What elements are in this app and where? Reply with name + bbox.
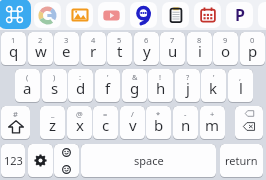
button[interactable]: 123 bbox=[1, 144, 25, 177]
button[interactable]: _ bbox=[40, 106, 65, 139]
staticText: r bbox=[90, 41, 97, 61]
staticText: a bbox=[23, 78, 32, 98]
button[interactable]: Backspace bbox=[235, 106, 263, 139]
button[interactable]: & bbox=[122, 69, 147, 102]
staticText: l bbox=[239, 78, 243, 98]
staticText: n bbox=[181, 115, 191, 135]
staticText: 6 bbox=[144, 35, 149, 45]
staticText: P bbox=[235, 4, 245, 26]
staticText: & bbox=[132, 72, 138, 82]
staticText: w bbox=[35, 41, 47, 61]
button[interactable]: App 0 bbox=[34, 2, 61, 28]
button[interactable]: 7 bbox=[160, 32, 185, 65]
button[interactable]: App 7 bbox=[258, 2, 266, 28]
staticText: m bbox=[205, 115, 220, 135]
staticText: 5 bbox=[117, 35, 122, 45]
staticText: 2 bbox=[38, 35, 43, 45]
button[interactable]: Settings bbox=[28, 144, 53, 177]
staticText: k bbox=[209, 78, 218, 98]
button[interactable]: App 3 bbox=[130, 2, 157, 28]
staticText: y bbox=[143, 41, 151, 61]
staticText: e bbox=[62, 41, 71, 61]
button[interactable]: space bbox=[81, 144, 216, 177]
staticText: u bbox=[168, 41, 178, 61]
staticText: + bbox=[210, 109, 215, 119]
staticText: i bbox=[198, 41, 202, 61]
button[interactable]: App 6 bbox=[226, 2, 253, 28]
staticText: x bbox=[76, 115, 84, 135]
staticText: j bbox=[186, 78, 190, 98]
staticText: : bbox=[79, 72, 82, 82]
staticText: _ bbox=[51, 109, 55, 119]
button[interactable]: = bbox=[93, 106, 118, 139]
staticText: 8 bbox=[197, 35, 202, 45]
button[interactable]: 0 bbox=[240, 32, 265, 65]
button[interactable]: ? bbox=[175, 69, 200, 102]
staticText: 7 bbox=[170, 35, 175, 45]
staticText: , bbox=[239, 72, 242, 82]
staticText: @ bbox=[76, 109, 83, 119]
button[interactable]: 2 bbox=[28, 32, 53, 65]
button[interactable]: ! bbox=[148, 69, 173, 102]
staticText: ’ bbox=[107, 72, 109, 82]
staticText: * bbox=[156, 109, 161, 119]
staticText: 4 bbox=[91, 35, 96, 45]
button[interactable]: App 1 bbox=[66, 2, 93, 28]
button[interactable]: / bbox=[120, 106, 145, 139]
staticText: g bbox=[130, 78, 140, 98]
button[interactable]: * bbox=[146, 106, 171, 139]
button[interactable]: Emoji bbox=[54, 144, 79, 177]
button[interactable]: Keyboard apps bbox=[0, 0, 31, 29]
button[interactable]: App 5 bbox=[194, 2, 221, 28]
staticText: 1 bbox=[11, 35, 16, 45]
staticText: ( bbox=[26, 72, 29, 82]
staticText: # bbox=[13, 109, 18, 119]
staticText: p bbox=[248, 41, 258, 61]
staticText: b bbox=[154, 115, 164, 135]
button[interactable]: 3 bbox=[54, 32, 79, 65]
button[interactable]: + bbox=[200, 106, 225, 139]
staticText: ! bbox=[159, 72, 162, 82]
staticText: f bbox=[105, 78, 111, 98]
staticText: ? bbox=[186, 72, 190, 82]
button[interactable]: Shift bbox=[1, 106, 30, 139]
staticText: z bbox=[49, 115, 57, 135]
button[interactable]: return bbox=[220, 144, 263, 177]
staticText: v bbox=[129, 115, 137, 135]
button[interactable]: ’ bbox=[201, 69, 226, 102]
staticText: d bbox=[76, 78, 86, 98]
staticText: o bbox=[221, 41, 231, 61]
button[interactable]: 5 bbox=[107, 32, 132, 65]
button[interactable]: 8 bbox=[187, 32, 212, 65]
button[interactable]: : bbox=[68, 69, 93, 102]
button[interactable]: - bbox=[173, 106, 198, 139]
button[interactable]: , bbox=[228, 69, 253, 102]
button[interactable]: 1 bbox=[1, 32, 26, 65]
button[interactable]: 4 bbox=[81, 32, 106, 65]
staticText: ) bbox=[53, 72, 56, 82]
button[interactable]: ) bbox=[42, 69, 67, 102]
staticText: s bbox=[51, 78, 59, 98]
staticText: 0 bbox=[250, 35, 255, 45]
button[interactable]: App 2 bbox=[98, 2, 125, 28]
staticText: - bbox=[184, 109, 187, 119]
staticText: t bbox=[117, 41, 123, 61]
staticText: 123 bbox=[4, 153, 23, 168]
staticText: c bbox=[102, 115, 110, 135]
staticText: return bbox=[225, 153, 258, 168]
button[interactable]: 9 bbox=[213, 32, 238, 65]
staticText: ’ bbox=[213, 72, 215, 82]
button[interactable]: ’ bbox=[95, 69, 120, 102]
button[interactable]: App 4 bbox=[162, 2, 189, 28]
staticText: 3 bbox=[64, 35, 69, 45]
staticText: q bbox=[9, 41, 19, 61]
button[interactable]: @ bbox=[67, 106, 92, 139]
button[interactable]: 6 bbox=[134, 32, 159, 65]
staticText: / bbox=[131, 109, 134, 119]
staticText: space bbox=[134, 153, 164, 168]
button[interactable]: ( bbox=[15, 69, 40, 102]
staticText: 9 bbox=[223, 35, 228, 45]
staticText: h bbox=[156, 78, 166, 98]
staticText: = bbox=[103, 109, 108, 119]
